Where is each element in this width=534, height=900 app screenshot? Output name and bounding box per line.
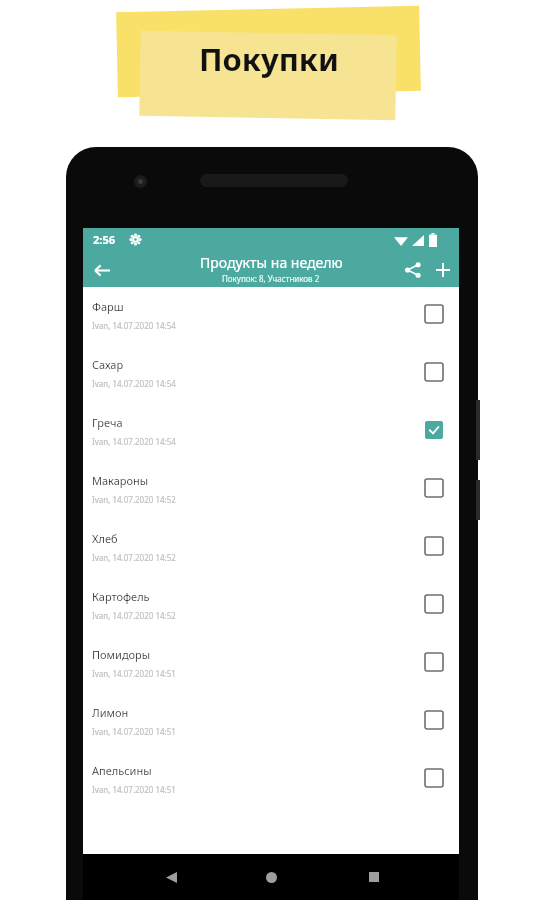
button[interactable]: Помидоры	[83, 635, 459, 693]
button[interactable]: Add	[428, 255, 458, 285]
button[interactable]: Home	[258, 864, 284, 890]
staticText: 2:56	[93, 232, 115, 247]
staticText: Продукты на неделю	[200, 253, 343, 272]
staticText: Картофель	[92, 589, 150, 604]
staticText: Сахар	[92, 357, 124, 372]
staticText: Лимон	[92, 705, 129, 720]
staticText: Ivan, 14.07.2020 14:54	[92, 436, 176, 447]
button[interactable]: Апельсины	[83, 751, 459, 809]
button[interactable]: Сахар	[83, 345, 459, 403]
button[interactable]: Share	[398, 255, 428, 285]
button[interactable]: Хлеб	[83, 519, 459, 577]
staticText: Ivan, 14.07.2020 14:51	[92, 784, 176, 795]
button[interactable]: Фарш	[83, 287, 459, 345]
staticText: Хлеб	[92, 531, 118, 546]
staticText: Ivan, 14.07.2020 14:52	[92, 610, 176, 621]
button[interactable]: Back	[85, 254, 117, 286]
staticText: Ivan, 14.07.2020 14:51	[92, 668, 176, 679]
staticText: Апельсины	[92, 763, 152, 778]
staticText: Ivan, 14.07.2020 14:51	[92, 726, 176, 737]
staticText: Греча	[92, 415, 123, 430]
button[interactable]: Back	[158, 864, 184, 890]
staticText: Ivan, 14.07.2020 14:54	[92, 378, 176, 389]
button[interactable]: Макароны	[83, 461, 459, 519]
staticText: Ivan, 14.07.2020 14:52	[92, 552, 176, 563]
staticText: Фарш	[92, 299, 124, 314]
staticText: Покупок: 8, Участников 2	[222, 273, 320, 284]
staticText: Макароны	[92, 473, 149, 488]
button[interactable]: Recents	[361, 864, 387, 890]
staticText: Покупки	[199, 38, 339, 80]
button[interactable]: Лимон	[83, 693, 459, 751]
button[interactable]: Греча	[83, 403, 459, 461]
button[interactable]: Картофель	[83, 577, 459, 635]
staticText: Ivan, 14.07.2020 14:52	[92, 494, 176, 505]
staticText: Ivan, 14.07.2020 14:54	[92, 320, 176, 331]
staticText: Помидоры	[92, 647, 151, 662]
